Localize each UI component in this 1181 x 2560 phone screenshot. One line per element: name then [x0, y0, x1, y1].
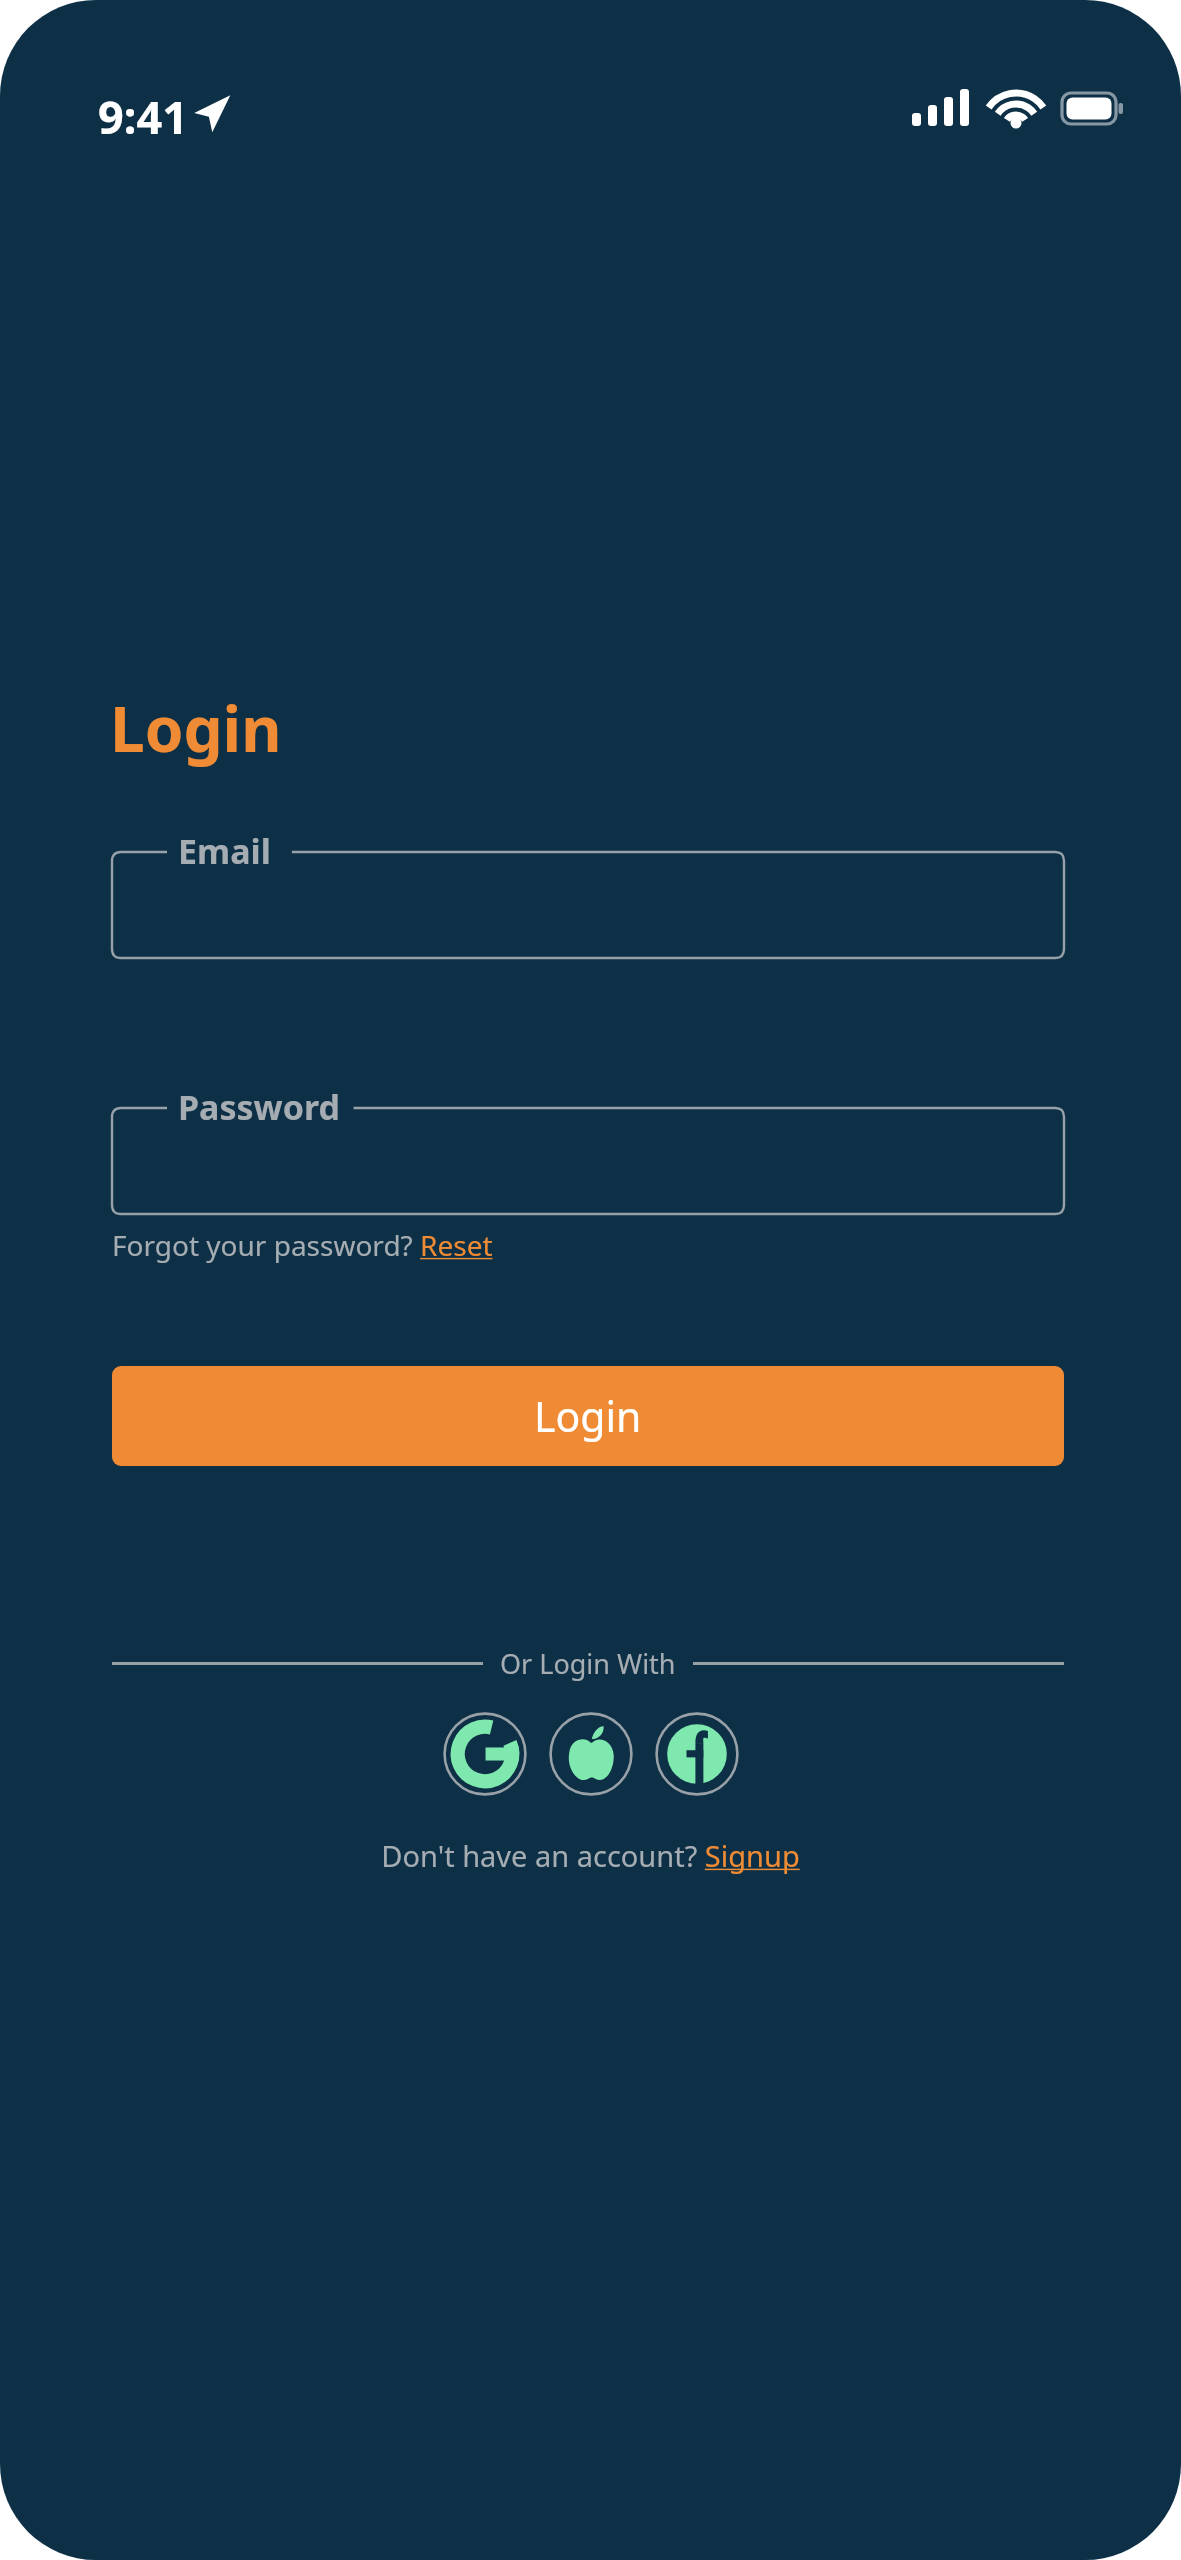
button[interactable]: Sign in with Facebook: [655, 1712, 739, 1796]
button[interactable]: Don't have an account? Signup: [381, 1834, 800, 1877]
staticText: Login: [110, 686, 282, 770]
button[interactable]: Password: [0, 1076, 1181, 1226]
button[interactable]: Sign in with Apple: [549, 1712, 633, 1796]
button[interactable]: Sign in with Google: [443, 1712, 527, 1796]
staticText: Or Login With: [500, 1645, 676, 1682]
button[interactable]: Forgot your password? Reset: [112, 1224, 493, 1266]
staticText: Forgot your password? Reset: [112, 1226, 493, 1264]
staticText: Login: [534, 1388, 642, 1444]
button[interactable]: Email: [0, 820, 1181, 970]
staticText: Password: [178, 1084, 340, 1130]
staticText: Don't have an account? Signup: [381, 1836, 800, 1875]
button[interactable]: Login: [112, 1366, 1064, 1466]
staticText: Email: [178, 828, 271, 874]
staticText: 9:41: [98, 86, 188, 147]
